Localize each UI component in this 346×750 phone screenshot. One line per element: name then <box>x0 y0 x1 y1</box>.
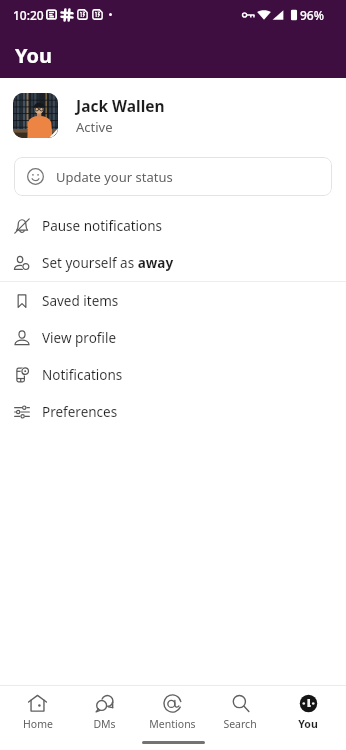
button[interactable]: Set yourself as away <box>0 244 346 281</box>
staticText: 10:20 <box>13 7 44 23</box>
staticText: Home <box>23 717 53 731</box>
staticText: Update your status <box>56 168 173 186</box>
button[interactable]: Mentions <box>138 686 206 735</box>
staticText: You <box>298 717 318 731</box>
staticText: Pause notifications <box>42 217 163 235</box>
button[interactable]: Update your status <box>14 157 332 196</box>
button[interactable]: Direct messages <box>71 686 138 735</box>
staticText: Preferences <box>42 403 118 421</box>
button[interactable]: Preferences <box>0 393 346 430</box>
staticText: Set yourself as away <box>42 254 174 272</box>
staticText: Jack Wallen <box>76 95 165 116</box>
button[interactable]: Jack Wallen <box>0 93 346 138</box>
staticText: View profile <box>42 329 117 347</box>
staticText: Notifications <box>42 366 123 384</box>
button[interactable]: Search <box>206 686 274 735</box>
staticText: Mentions <box>149 717 196 731</box>
staticText: Active <box>76 118 113 136</box>
button[interactable]: Saved items <box>0 282 346 319</box>
staticText: You <box>15 42 53 69</box>
button[interactable]: Pause notifications <box>0 207 346 244</box>
staticText: DMs <box>93 717 116 731</box>
staticText: Saved items <box>42 292 119 310</box>
button[interactable]: View profile <box>0 319 346 356</box>
staticText: Search <box>223 717 257 731</box>
button[interactable]: You <box>274 686 342 735</box>
button[interactable]: Notifications <box>0 356 346 393</box>
button[interactable]: Home <box>4 686 71 735</box>
staticText: 96% <box>300 7 324 23</box>
